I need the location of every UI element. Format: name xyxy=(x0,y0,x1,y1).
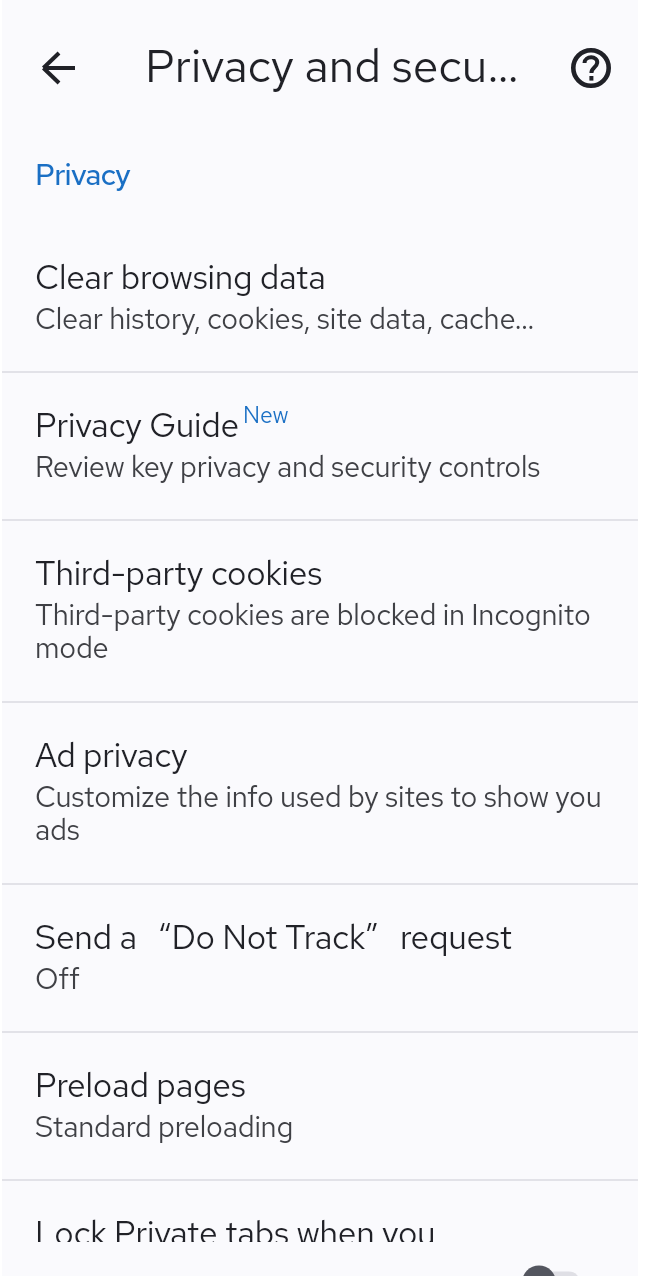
staticText: Ad privacy xyxy=(35,733,188,777)
button[interactable]: Clear browsing data xyxy=(2,225,638,371)
staticText: Third-party cookies are blocked in Incog… xyxy=(35,595,624,667)
staticText: Clear browsing data xyxy=(35,255,326,299)
staticText: Third-party cookies xyxy=(35,551,323,595)
button[interactable]: Lock Private tabs when you leave Meta xyxy=(2,1181,638,1276)
button[interactable]: Third-party cookies xyxy=(2,521,638,701)
staticText: New xyxy=(243,400,289,430)
button[interactable]: Send a “Do Not Track” request xyxy=(2,885,638,1031)
button[interactable]: Back xyxy=(18,28,98,108)
button[interactable]: Ad privacy xyxy=(2,703,638,883)
staticText: Lock Private tabs when you leave Meta xyxy=(35,1211,503,1242)
staticText: Off xyxy=(35,959,80,997)
staticText: Privacy Guide xyxy=(35,403,239,447)
staticText: Privacy xyxy=(35,154,131,194)
staticText: Privacy and secu… xyxy=(145,35,519,96)
button[interactable]: Privacy Guide xyxy=(2,373,638,519)
button[interactable]: Preload pages xyxy=(2,1033,638,1179)
staticText: Standard preloading xyxy=(35,1107,294,1145)
staticText: Customize the info used by sites to show… xyxy=(35,777,624,849)
button[interactable]: Help xyxy=(551,28,631,108)
staticText: Preload pages xyxy=(35,1063,246,1107)
staticText: Review key privacy and security controls xyxy=(35,447,541,485)
staticText: Clear history, cookies, site data, cache… xyxy=(35,299,535,337)
staticText: Send a “Do Not Track” request xyxy=(35,915,512,959)
button[interactable]: Lock Private tabs toggle xyxy=(521,1267,581,1276)
